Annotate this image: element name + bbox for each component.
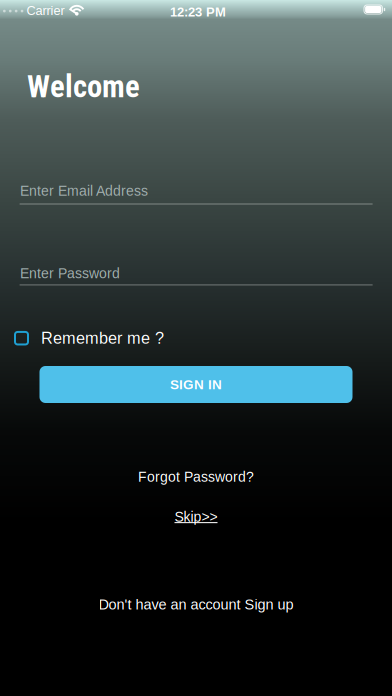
staticText: SIGN IN	[170, 377, 222, 392]
button[interactable]: Remember me ?	[14, 327, 164, 349]
staticText: Skip>>	[174, 509, 217, 525]
staticText: Enter Email Address	[20, 183, 148, 199]
button[interactable]: Forgot Password?	[138, 469, 254, 485]
staticText: Carrier	[26, 3, 64, 18]
staticText: Enter Password	[20, 265, 120, 281]
staticText: Welcome	[27, 69, 140, 105]
button[interactable]: SIGN IN	[39, 366, 352, 403]
staticText: Remember me ?	[41, 329, 164, 347]
staticText: Don't have an account Sign up	[98, 596, 293, 613]
staticText: Forgot Password?	[138, 469, 254, 485]
staticText: 12:23 PM	[170, 5, 226, 19]
button[interactable]: Don't have an account Sign up	[98, 596, 293, 613]
button[interactable]: Skip>>	[174, 509, 217, 525]
